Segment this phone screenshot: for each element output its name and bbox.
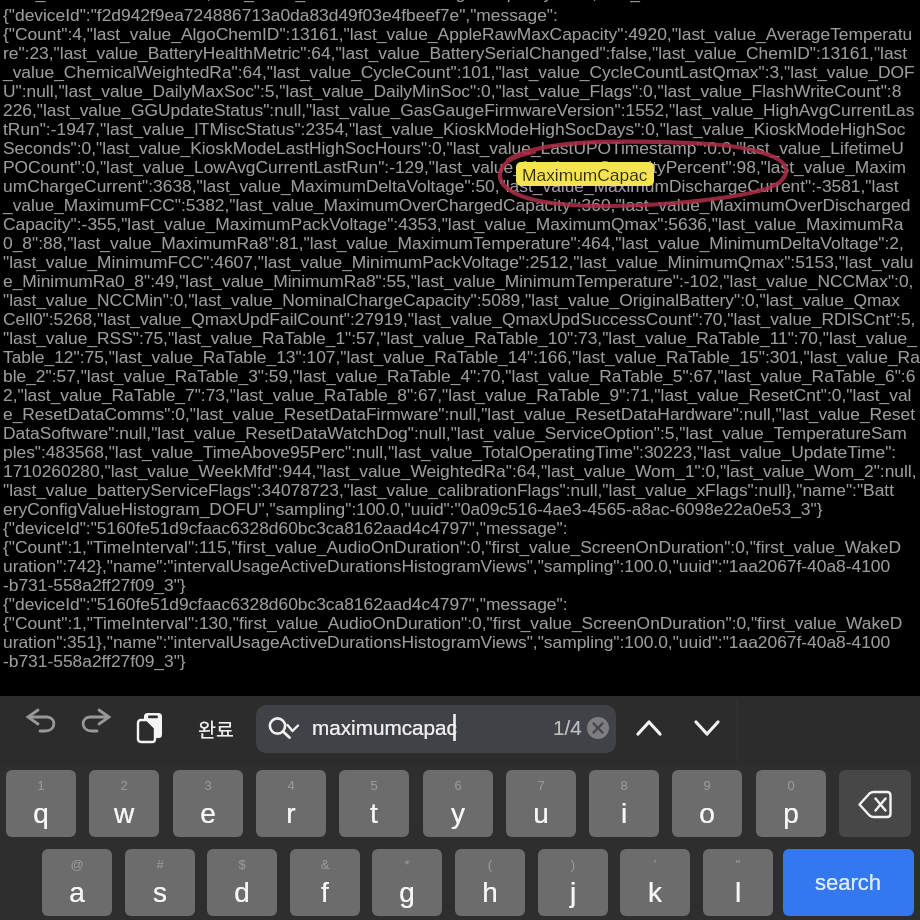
button[interactable]: $ [207,849,277,916]
staticText: e [173,798,243,829]
staticText: 2,"last_value_RaTable_7":73,"last_value_… [3,385,920,404]
button[interactable]: Paste [127,705,173,751]
button[interactable]: 1 [6,770,76,837]
button[interactable]: ( [455,849,525,916]
staticText: e_MinimumRa0_8":49,"last_value_MinimumRa… [3,271,914,290]
staticText: 226,"last_value_GGUpdateStatus":null,"la… [3,100,915,119]
staticText: w [89,798,159,829]
staticText: k [620,877,690,908]
button[interactable]: Undo [18,705,64,751]
button[interactable]: search [783,849,914,916]
staticText: f [290,877,360,908]
button[interactable]: 9 [672,770,742,837]
staticText: s [125,877,195,908]
button[interactable]: 3 [173,770,243,837]
staticText: 6 [423,778,493,793]
button[interactable]: Clear search [587,717,609,739]
staticText: {"Count":1,"TimeInterval":130,"first_val… [3,613,903,632]
staticText: 1 [6,778,76,793]
button[interactable]: * [372,849,442,916]
button[interactable]: & [290,849,360,916]
staticText: & [290,857,360,872]
button[interactable]: maximumcapac [256,705,616,753]
staticText: 4 [256,778,326,793]
staticText: 완료 [198,714,234,742]
button[interactable]: # [125,849,195,916]
staticText: y [423,798,493,829]
button[interactable]: 완료 [188,705,244,751]
staticText: 5 [339,778,409,793]
staticText: j [538,877,608,908]
staticText: $ [207,857,277,872]
staticText: ) [538,857,608,872]
staticText: re":23,"last_value_BatteryHealthMetric":… [3,43,908,62]
staticText: l [703,877,773,908]
staticText: DataSoftware":null,"last_value_ResetData… [3,423,907,442]
staticText: Capacity":-355,"last_value_MaximumPackVo… [3,214,904,233]
staticText: "last_value_batteryServiceFlags":3407872… [3,480,894,499]
staticText: 3 [173,778,243,793]
button[interactable]: 5 [339,770,409,837]
staticText: o [672,798,742,829]
button[interactable]: Previous result [626,705,672,751]
button[interactable]: 6 [423,770,493,837]
staticText: ble_2":57,"last_value_RaTable_3":59,"las… [3,366,916,385]
staticText: 8 [589,778,659,793]
button[interactable]: 8 [589,770,659,837]
staticText: ( [455,857,525,872]
button[interactable]: Next result [684,705,730,751]
staticText: r [256,798,326,829]
button[interactable]: 2 [89,770,159,837]
staticText: -b731-558a2ff27f09_3"} [3,651,186,670]
staticText: "last_value_NCCMin":0,"last_value_Nomina… [3,290,900,309]
staticText: eryConfigValueHistogram_DOFU","sampling"… [3,499,823,518]
staticText: Cell0":5268,"last_value_QmaxUpdFailCount… [3,309,916,328]
staticText: POCount":0,"last_value_LowAvgCurrentLast… [3,157,906,176]
button[interactable]: 7 [506,770,576,837]
staticText: uration":742},"name":"intervalUsageActiv… [3,556,891,575]
staticText: 0 [756,778,826,793]
button[interactable]: MaximumCapac [516,162,654,186]
button[interactable]: ' [620,849,690,916]
staticText: d [207,877,277,908]
staticText: tRun":-1947,"last_value_ITMiscStatus":23… [3,119,906,138]
staticText: q [6,798,76,829]
staticText: p [756,798,826,829]
staticText: -b731-558a2ff27f09_3"} [3,575,186,594]
staticText: U":null,"last_value_DailyMaxSoc":5,"last… [3,81,902,100]
staticText: 0_8":88,"last_value_MaximumRa8":81,"last… [3,233,904,252]
staticText: 2 [89,778,159,793]
staticText: _value_MaximumFCC":5382,"last_value_Maxi… [3,195,911,214]
staticText: alue_MaximumFCC":5382,"last_value_Maximu… [3,0,649,2]
button[interactable]: Backspace [839,770,911,837]
staticText: maximumcapac [312,716,457,739]
staticText: i [589,798,659,829]
staticText: "last_value_RSS":75,"last_value_RaTable_… [3,328,920,347]
staticText: uration":351},"name":"intervalUsageActiv… [3,632,891,651]
button[interactable]: 0 [756,770,826,837]
staticText: search [815,870,882,895]
staticText: _value_ChemicalWeightedRa":64,"last_valu… [3,62,915,81]
button[interactable]: ) [538,849,608,916]
staticText: t [339,798,409,829]
button[interactable]: " [703,849,773,916]
staticText: 7 [506,778,576,793]
staticText: * [372,857,442,872]
button[interactable]: Redo [73,705,119,751]
staticText: ples":483568,"last_value_TimeAbove95Perc… [3,442,897,461]
staticText: Table_12":75,"last_value_RaTable_13":107… [3,347,920,366]
staticText: {"Count":4,"last_value_AlgoChemID":13161… [3,24,913,43]
staticText: {"Count":1,"TimeInterval":115,"first_val… [3,537,901,556]
staticText: h [455,877,525,908]
staticText: {"deviceId":"5160fe51d9cfaac6328d60bc3ca… [3,594,568,613]
staticText: 1710260280,"last_value_WeekMfd":944,"las… [3,461,917,480]
staticText: {"deviceId":"5160fe51d9cfaac6328d60bc3ca… [3,518,568,537]
button[interactable]: @ [42,849,112,916]
staticText: {"deviceId":"f2d942f9ea724886713a0da83d4… [3,5,558,24]
staticText: "last_value_MinimumFCC":4607,"last_value… [3,252,914,271]
staticText: u [506,798,576,829]
button[interactable]: 4 [256,770,326,837]
staticText: Seconds":0,"last_value_KioskModeLastHigh… [3,138,904,157]
